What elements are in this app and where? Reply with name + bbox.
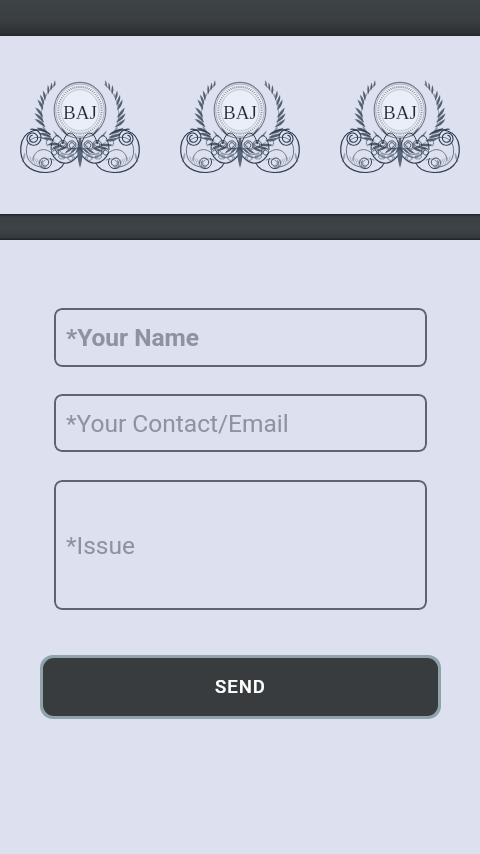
staticText: *Your Contact/Email — [66, 409, 289, 438]
staticText: BAJ — [63, 102, 97, 123]
button[interactable]: *Issue — [54, 480, 427, 610]
staticText: *Issue — [66, 531, 136, 560]
button[interactable]: SEND — [43, 658, 438, 716]
button[interactable]: *Your Name — [54, 308, 427, 367]
staticText: BAJ — [383, 102, 417, 123]
staticText: SEND — [215, 676, 266, 698]
button[interactable]: *Your Contact/Email — [54, 394, 427, 452]
staticText: BAJ — [223, 102, 257, 123]
staticText: *Your Name — [66, 323, 199, 352]
